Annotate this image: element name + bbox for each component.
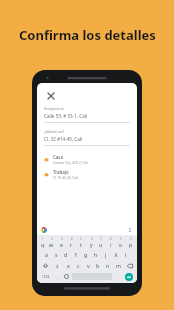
button[interactable]: x <box>63 261 73 270</box>
staticText: j <box>105 251 107 258</box>
staticText: r <box>70 241 73 248</box>
button[interactable]: Mayúsculas <box>38 261 52 270</box>
button[interactable]: 6 <box>86 237 96 248</box>
button[interactable]: v <box>83 261 93 270</box>
staticText: n <box>106 262 110 269</box>
staticText: c <box>77 262 80 269</box>
staticText: a <box>45 251 48 258</box>
staticText: 2 <box>51 237 53 241</box>
staticText: y <box>90 241 93 248</box>
staticText: 3 <box>61 237 63 241</box>
staticText: d <box>64 251 68 258</box>
staticText: o <box>119 241 123 248</box>
button[interactable]: 5 <box>76 237 86 248</box>
staticText: 0 <box>130 237 132 241</box>
staticText: Cl. 16 #3-20, Cali <box>53 176 78 180</box>
button[interactable]: ?123 <box>38 272 53 281</box>
staticText: ?123 <box>42 274 50 279</box>
staticText: w <box>49 241 54 248</box>
button[interactable]: j <box>101 250 111 259</box>
staticText: x <box>67 262 70 269</box>
staticText: m <box>116 262 121 269</box>
button[interactable]: g <box>81 250 91 259</box>
staticText: v <box>87 262 90 269</box>
staticText: l <box>125 251 127 258</box>
staticText: b <box>96 262 100 269</box>
staticText: , <box>57 274 58 279</box>
button[interactable]: 2 <box>47 237 56 248</box>
staticText: 4 <box>71 237 73 241</box>
staticText: s <box>55 251 58 258</box>
button[interactable]: 7 <box>96 237 106 248</box>
button[interactable]: a <box>42 250 51 259</box>
button[interactable]: 0 <box>126 237 136 248</box>
button[interactable]: z <box>52 261 63 270</box>
staticText: Confirma los detalles <box>19 26 156 44</box>
staticText: g <box>84 251 88 258</box>
button[interactable]: Enter <box>122 272 136 281</box>
staticText: i <box>110 241 112 248</box>
button[interactable]: 1 <box>38 237 47 248</box>
button[interactable]: Más opciones <box>127 227 133 233</box>
button[interactable]: d <box>61 250 71 259</box>
staticText: k <box>115 251 118 258</box>
button[interactable]: Casa <box>44 154 130 165</box>
button[interactable]: c <box>73 261 83 270</box>
staticText: Cl. 32 #14-45, Cali <box>44 136 83 142</box>
staticText: q <box>41 241 45 248</box>
button[interactable]: n <box>103 261 113 270</box>
button[interactable]: ¿Adónde vas? <box>44 130 130 146</box>
staticText: h <box>94 251 98 258</box>
staticText: u <box>99 241 103 248</box>
staticText: 8 <box>110 237 112 241</box>
staticText: . <box>117 274 118 279</box>
button[interactable]: Emoji <box>62 272 71 281</box>
staticText: f <box>75 251 77 258</box>
button[interactable]: f <box>71 250 81 259</box>
staticText: p <box>129 241 133 248</box>
staticText: z <box>56 262 59 269</box>
button[interactable]: h <box>91 250 101 259</box>
staticText: Trabajo <box>53 169 69 175</box>
button[interactable]: 8 <box>106 237 116 248</box>
button[interactable]: l <box>121 250 131 259</box>
button[interactable]: Google <box>41 227 47 233</box>
button[interactable]: Recogerse en <box>44 107 130 123</box>
button[interactable]: m <box>113 261 123 270</box>
button[interactable]: Trabajo <box>44 169 130 180</box>
button[interactable]: Borrar <box>123 261 136 270</box>
staticText: 7 <box>100 237 102 241</box>
staticText: e <box>60 241 63 248</box>
button[interactable]: Cerrar <box>44 89 57 102</box>
staticText: 6 <box>91 237 93 241</box>
button[interactable]: , <box>53 272 62 281</box>
staticText: Recogerse en <box>44 107 65 111</box>
staticText: t <box>80 241 82 248</box>
staticText: Calle 53, # 53-1, Cali <box>44 113 88 119</box>
button[interactable]: 4 <box>66 237 76 248</box>
button[interactable]: b <box>93 261 103 270</box>
button[interactable]: 3 <box>56 237 66 248</box>
staticText: 1 <box>42 237 44 241</box>
staticText: ¿Adónde vas? <box>44 130 65 134</box>
staticText: 5 <box>80 237 82 241</box>
button[interactable]: k <box>111 250 121 259</box>
staticText: Carrera 12a, #10-2, Cali <box>53 161 88 165</box>
staticText: 9 <box>120 237 122 241</box>
button[interactable]: s <box>51 250 61 259</box>
button[interactable]: 9 <box>116 237 126 248</box>
staticText: Casa <box>53 154 63 160</box>
